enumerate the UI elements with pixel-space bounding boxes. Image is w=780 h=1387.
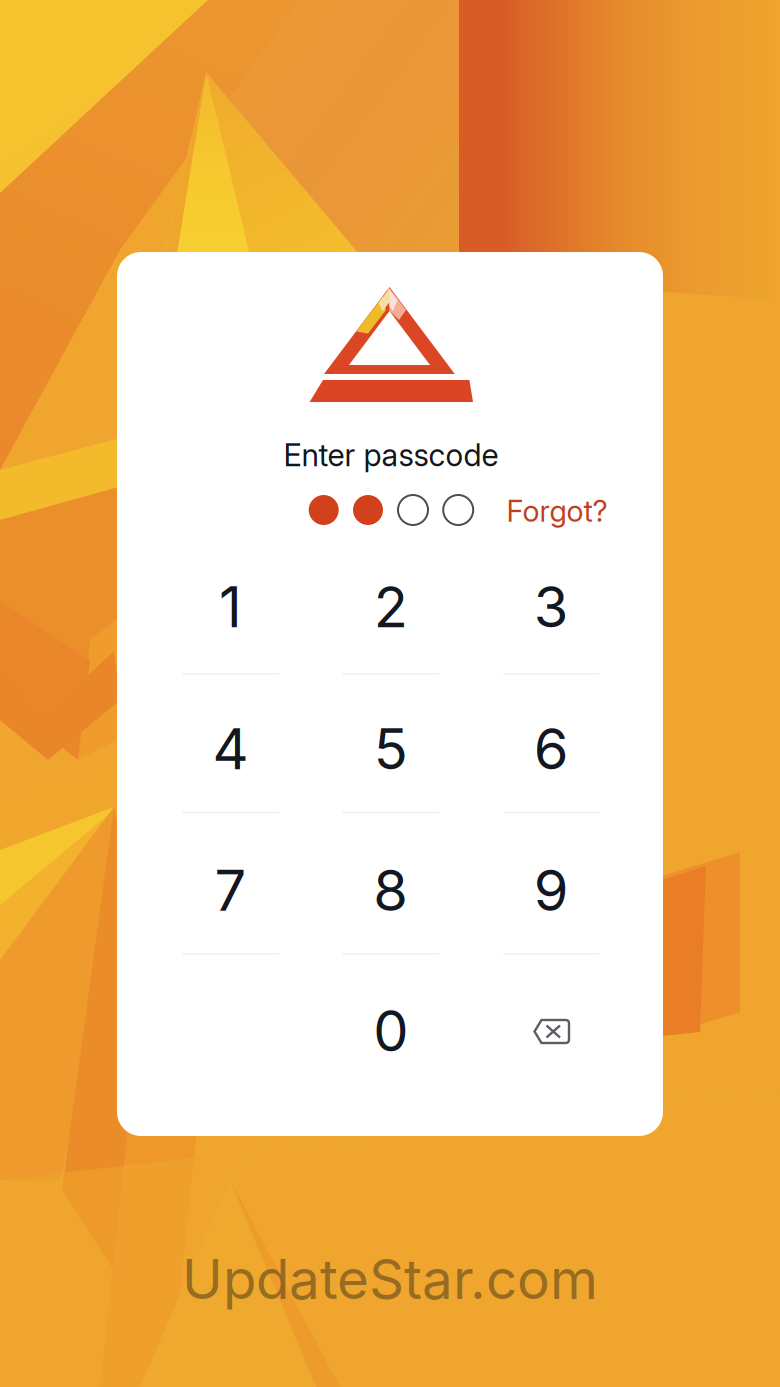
- staticText: 6: [534, 715, 569, 783]
- staticText: Forgot?: [506, 493, 607, 529]
- staticText: 2: [374, 573, 408, 641]
- staticText: 8: [373, 857, 408, 924]
- staticText: Enter passcode: [283, 436, 498, 473]
- button[interactable]: 6: [471, 683, 631, 815]
- button[interactable]: 0: [311, 965, 471, 1097]
- staticText: 1: [219, 573, 242, 641]
- button[interactable]: 3: [471, 541, 631, 673]
- staticText: 3: [534, 573, 569, 641]
- staticText: 7: [214, 857, 246, 924]
- button[interactable]: Forgot?: [487, 487, 627, 535]
- button[interactable]: 4: [150, 683, 310, 815]
- button[interactable]: 9: [471, 824, 631, 956]
- staticText: 0: [373, 997, 408, 1065]
- button[interactable]: 7: [150, 824, 310, 956]
- staticText: 4: [212, 715, 248, 783]
- button[interactable]: 1: [150, 541, 310, 673]
- button[interactable]: 8: [311, 824, 471, 956]
- staticText: 9: [534, 857, 569, 924]
- staticText: 5: [374, 715, 408, 783]
- button[interactable]: 5: [311, 683, 471, 815]
- button[interactable]: 2: [311, 541, 471, 673]
- staticText: UpdateStar.com: [182, 1246, 598, 1312]
- button[interactable]: Delete: [471, 965, 631, 1097]
